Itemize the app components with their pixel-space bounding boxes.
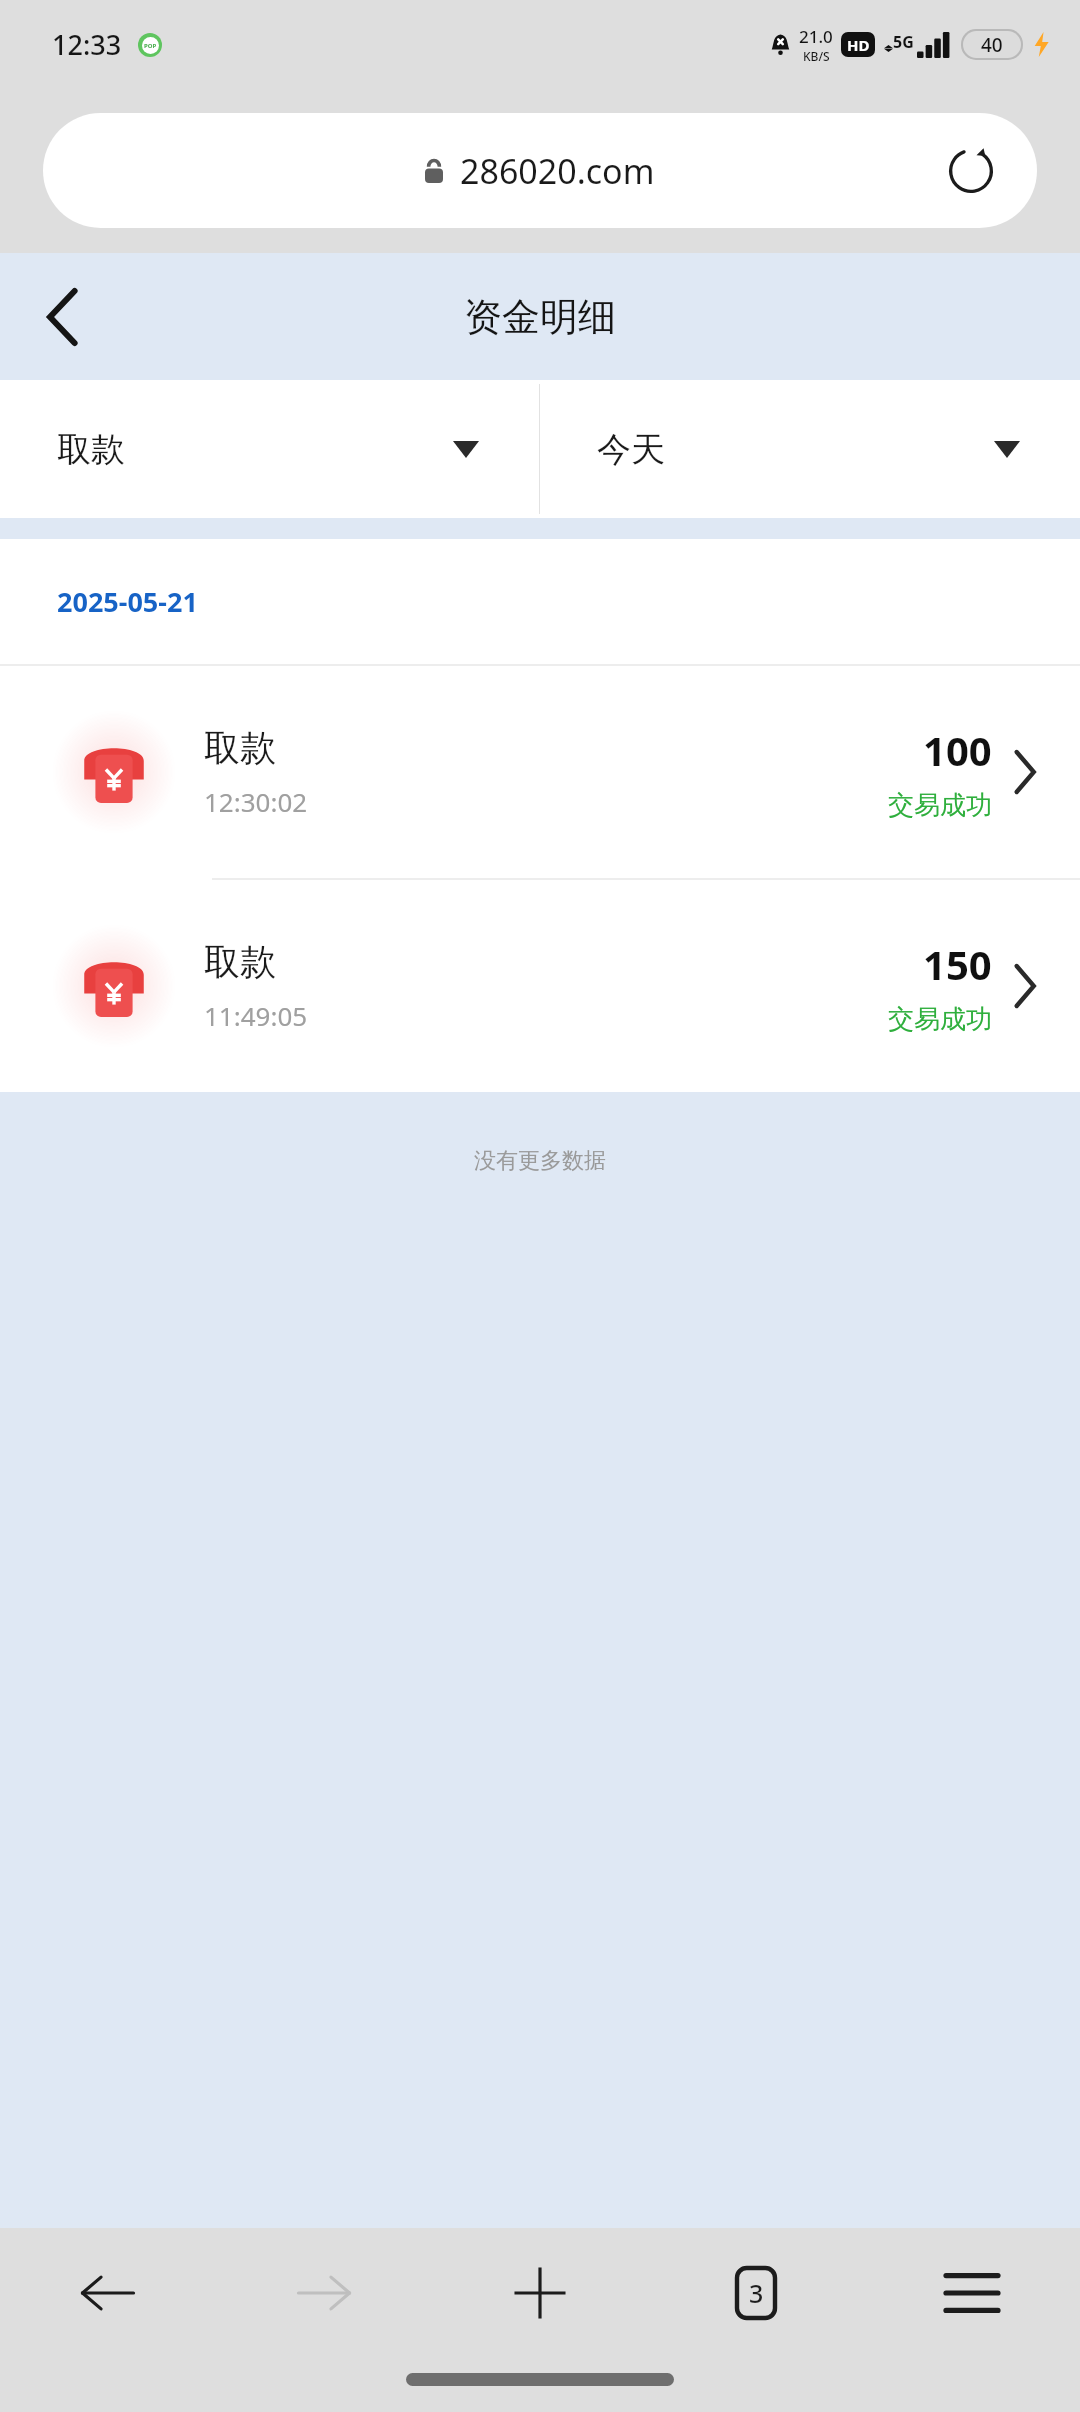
staticText: 今天 (597, 428, 665, 471)
staticText: 2025-05-21 (57, 583, 198, 620)
staticText: 取款 (204, 725, 276, 770)
button[interactable]: Back (0, 2228, 216, 2358)
staticText: 150 (923, 937, 992, 991)
staticText: 100 (923, 723, 992, 777)
button[interactable]: Menu (864, 2228, 1080, 2358)
staticText: 没有更多数据 (0, 1147, 1080, 1175)
staticText: 5G (893, 31, 914, 53)
staticText: 交易成功 (888, 789, 992, 822)
staticText: 取款 (57, 428, 125, 471)
button[interactable]: Back (22, 277, 102, 357)
staticText: 交易成功 (888, 1003, 992, 1036)
button[interactable]: New tab (432, 2228, 648, 2358)
staticText: 11:49:05 (204, 998, 308, 1033)
staticText: 取款 (204, 939, 276, 984)
staticText: HD (847, 35, 870, 55)
button[interactable]: Reload (943, 143, 999, 199)
staticText: 12:33 (52, 26, 122, 63)
button[interactable]: Tabs: 3 (648, 2228, 864, 2358)
staticText: 3 (749, 2276, 764, 2310)
button[interactable]: Forward (216, 2228, 432, 2358)
staticText: POP (144, 42, 157, 50)
button[interactable]: 取款 (0, 880, 1080, 1092)
staticText: 286020.com (460, 148, 655, 194)
staticText: 21.0 (799, 25, 833, 48)
staticText: 40 (981, 32, 1003, 58)
button[interactable]: 286020.com (43, 113, 1037, 228)
button[interactable]: 今天 (540, 380, 1080, 518)
staticText: 资金明细 (464, 293, 616, 341)
button[interactable]: 取款 (0, 666, 1080, 878)
staticText: KB/S (803, 48, 830, 64)
button[interactable]: 取款 (0, 380, 539, 518)
staticText: 12:30:02 (204, 784, 308, 819)
